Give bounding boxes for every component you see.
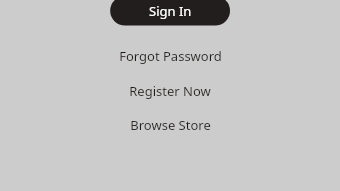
staticText: Browse Store — [130, 116, 211, 134]
staticText: Sign In — [149, 2, 192, 20]
button[interactable]: Forgot Password — [107, 44, 234, 68]
button[interactable]: Sign In — [110, 0, 230, 26]
staticText: Forgot Password — [119, 47, 222, 65]
button[interactable]: Register Now — [117, 79, 223, 103]
staticText: Register Now — [129, 82, 211, 100]
button[interactable]: Browse Store — [118, 113, 223, 137]
